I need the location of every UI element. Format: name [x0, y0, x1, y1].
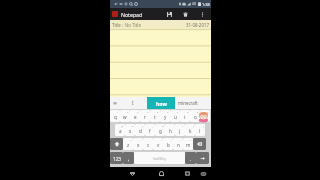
button[interactable]: Space [134, 151, 185, 165]
staticText: Title : [112, 22, 125, 28]
button[interactable]: : [153, 137, 163, 151]
button[interactable]: ' [143, 137, 153, 151]
staticText: I [132, 100, 134, 107]
button[interactable]: ( [185, 123, 195, 137]
button[interactable]: $ [135, 123, 145, 137]
button[interactable]: Delete [180, 9, 191, 20]
button[interactable]: More options [197, 9, 207, 19]
button[interactable]: , [123, 151, 134, 165]
button[interactable]: " [133, 137, 143, 151]
button[interactable]: + [175, 123, 185, 137]
staticText: Notepad [121, 11, 143, 18]
button[interactable]: Recents [179, 167, 195, 180]
staticText: d [139, 128, 142, 134]
staticText: x [137, 142, 140, 148]
staticText: y [164, 114, 167, 120]
button[interactable]: 8 [180, 109, 190, 123]
button[interactable]: Hide keyboard [195, 167, 211, 180]
staticText: b [167, 142, 170, 148]
button[interactable]: 7 [170, 109, 180, 123]
staticText: 31-08-2017 [186, 22, 209, 28]
button[interactable]: - [165, 123, 175, 137]
staticText: ! [181, 138, 182, 141]
button[interactable]: & [155, 123, 165, 137]
staticText: w [123, 114, 127, 120]
button[interactable]: 4 [140, 109, 150, 123]
staticText: @ [121, 124, 124, 127]
staticText: " [141, 138, 142, 141]
staticText: k [189, 128, 192, 134]
staticText: - [173, 124, 174, 127]
button[interactable]: Home [153, 167, 169, 180]
button[interactable]: _ [145, 123, 155, 137]
staticText: how [156, 100, 167, 107]
staticText: r [144, 114, 146, 120]
staticText: a [119, 128, 122, 134]
staticText: p [204, 114, 207, 120]
staticText: i [184, 114, 186, 120]
button[interactable]: minecraft [175, 97, 211, 109]
button[interactable]: 2 [120, 109, 130, 123]
staticText: z [127, 142, 130, 148]
staticText: 123 [113, 156, 121, 162]
button[interactable]: Backspace [193, 137, 206, 151]
staticText: u [174, 114, 177, 120]
staticText: 0 [207, 110, 209, 113]
button[interactable]: ; [163, 137, 173, 151]
staticText: SwiftKey [153, 156, 167, 160]
staticText: t [154, 114, 156, 120]
button[interactable]: @ [115, 123, 125, 137]
button[interactable]: Save [164, 9, 175, 20]
button[interactable]: . [185, 151, 196, 165]
staticText: m [186, 142, 191, 148]
staticText: $ [142, 124, 144, 127]
button[interactable]: how [147, 97, 175, 109]
staticText: 3 [137, 110, 139, 113]
button[interactable]: ) [195, 123, 205, 137]
staticText: j [179, 128, 181, 134]
button[interactable]: Back [124, 167, 140, 180]
staticText: minecraft [178, 100, 198, 106]
button[interactable]: 3 [130, 109, 140, 123]
button[interactable]: Keyboard menu [110, 97, 119, 109]
staticText: f [149, 128, 151, 134]
staticText: . [190, 156, 192, 162]
staticText: h [169, 128, 172, 134]
staticText: + [182, 124, 184, 127]
button[interactable]: 6 [160, 109, 170, 123]
button[interactable]: 1 [110, 109, 120, 123]
staticText: s [129, 128, 132, 134]
staticText: 5 [157, 110, 159, 113]
staticText: 7 [177, 110, 179, 113]
staticText: ? [190, 138, 192, 141]
button[interactable]: 9 [190, 109, 200, 123]
staticText: 1:38 [202, 2, 210, 7]
staticText: ) [203, 124, 204, 127]
staticText: l [199, 128, 201, 134]
button[interactable]: 0 [200, 109, 210, 123]
staticText: & [162, 124, 164, 127]
staticText: : [161, 138, 162, 141]
staticText: 9 [197, 110, 199, 113]
button[interactable]: I [119, 97, 147, 109]
staticText: c [147, 142, 150, 148]
button[interactable]: * [123, 137, 133, 151]
staticText: 2 [127, 110, 129, 113]
button[interactable]: ? [183, 137, 193, 151]
button[interactable]: Shift [110, 137, 123, 151]
staticText: 4 [147, 110, 149, 113]
button[interactable]: 5 [150, 109, 160, 123]
staticText: No Title [125, 22, 141, 28]
button[interactable]: # [125, 123, 135, 137]
staticText: n [177, 142, 180, 148]
staticText: ; [171, 138, 172, 141]
staticText: 8 [187, 110, 189, 113]
button[interactable]: ! [173, 137, 183, 151]
staticText: 4G [192, 2, 197, 6]
staticText: ' [151, 138, 152, 141]
staticText: 6 [167, 110, 169, 113]
staticText: g [159, 128, 162, 134]
button[interactable]: 123 [110, 151, 123, 165]
button[interactable]: Enter [196, 151, 209, 165]
